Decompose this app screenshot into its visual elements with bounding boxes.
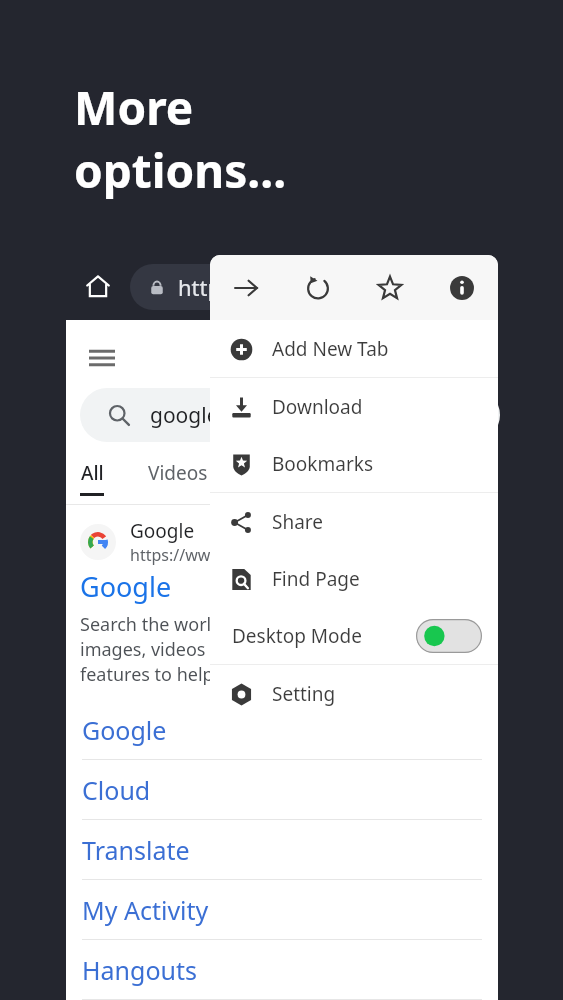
- button[interactable]: Menu: [78, 334, 126, 382]
- button[interactable]: Page info: [426, 255, 498, 320]
- staticText: Search the world's: [80, 612, 235, 637]
- button[interactable]: Setting: [210, 665, 498, 722]
- button[interactable]: Google: [80, 568, 172, 605]
- button[interactable]: Hangouts: [66, 940, 498, 1000]
- button[interactable]: My Activity: [66, 880, 498, 940]
- staticText: Desktop Mode: [232, 623, 362, 649]
- staticText: Cloud: [82, 773, 151, 807]
- button[interactable]: Cloud: [66, 760, 498, 820]
- staticText: images, videos and: [80, 637, 243, 662]
- staticText: Google: [82, 713, 167, 747]
- button[interactable]: Share: [210, 493, 498, 550]
- staticText: options...: [74, 139, 287, 202]
- staticText: Google: [130, 518, 195, 544]
- button[interactable]: Videos: [148, 460, 208, 486]
- button[interactable]: google: [80, 388, 500, 442]
- button[interactable]: Download: [210, 378, 498, 435]
- staticText: Bookmarks: [272, 451, 374, 477]
- staticText: google: [150, 401, 219, 430]
- staticText: All: [81, 460, 104, 486]
- staticText: Setting: [272, 681, 336, 707]
- button[interactable]: Add New Tab: [210, 320, 498, 377]
- staticText: https://www.g: [130, 544, 237, 566]
- staticText: Download: [272, 394, 363, 420]
- button[interactable]: Bookmarks: [210, 435, 498, 492]
- button[interactable]: Bookmark: [354, 255, 426, 320]
- staticText: Translate: [82, 833, 190, 867]
- button[interactable]: Find Page: [210, 550, 498, 607]
- staticText: Videos: [148, 460, 208, 486]
- button[interactable]: Forward: [210, 255, 282, 320]
- staticText: Find Page: [272, 566, 360, 592]
- button[interactable]: All: [80, 460, 104, 496]
- button[interactable]: Reload: [282, 255, 354, 320]
- staticText: https: [178, 272, 232, 302]
- button[interactable]: Translate: [66, 820, 498, 880]
- staticText: Add New Tab: [272, 336, 389, 362]
- staticText: More: [74, 76, 194, 139]
- button[interactable]: Google: [66, 700, 498, 760]
- staticText: My Activity: [82, 893, 209, 927]
- button[interactable]: https: [130, 264, 430, 310]
- button[interactable]: Home: [74, 262, 122, 310]
- button[interactable]: Desktop Mode: [210, 607, 498, 664]
- staticText: Share: [272, 509, 324, 535]
- staticText: features to help yo: [80, 662, 239, 687]
- staticText: Hangouts: [82, 953, 197, 987]
